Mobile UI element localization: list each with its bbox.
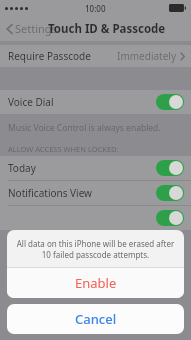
button[interactable]: Notifications View bbox=[0, 181, 191, 205]
button[interactable]: Voice Dial bbox=[0, 90, 191, 114]
staticText: Cancel bbox=[75, 310, 117, 328]
button[interactable]: Toggle bbox=[156, 210, 184, 226]
staticText: Music Voice Control is always enabled. bbox=[8, 122, 161, 134]
staticText: All data on this iPhone will be erased a… bbox=[14, 238, 177, 260]
staticText: Touch ID & Passcode bbox=[48, 21, 166, 37]
staticText: Today bbox=[8, 161, 36, 175]
button[interactable]: Require Passcode bbox=[0, 45, 191, 67]
button[interactable]: Today bbox=[0, 156, 191, 180]
button[interactable]: Toggle Today bbox=[156, 160, 184, 176]
staticText: Notifications View bbox=[8, 186, 92, 200]
staticText: Enable bbox=[75, 274, 117, 292]
button[interactable]: Settings bbox=[4, 18, 59, 39]
staticText: Immediately bbox=[117, 49, 176, 63]
staticText: Require Passcode bbox=[8, 49, 91, 63]
staticText: Settings bbox=[15, 21, 57, 36]
button[interactable]: Cancel bbox=[7, 304, 184, 334]
staticText: 10:00 bbox=[85, 3, 106, 14]
button[interactable]: Toggle bbox=[0, 206, 191, 230]
button[interactable]: Toggle Notifications View bbox=[156, 185, 184, 201]
button[interactable]: Enable bbox=[7, 268, 184, 298]
staticText: ALLOW ACCESS WHEN LOCKED: bbox=[8, 144, 119, 154]
button[interactable]: Toggle Voice Dial bbox=[156, 94, 184, 110]
staticText: Voice Dial bbox=[8, 95, 54, 109]
